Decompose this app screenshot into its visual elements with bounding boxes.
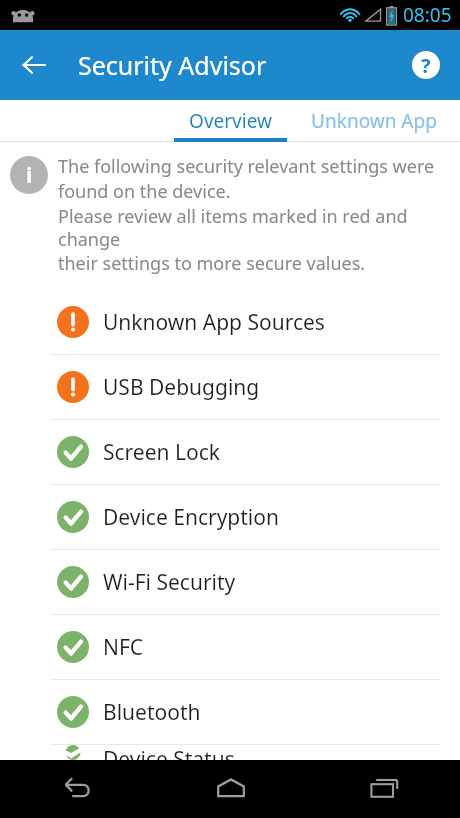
staticText: Wi-Fi Security <box>103 568 236 597</box>
staticText: i <box>26 161 33 190</box>
button[interactable]: Help <box>402 41 450 89</box>
staticText: Security Advisor <box>78 48 267 82</box>
button[interactable]: Home <box>154 760 307 818</box>
staticText: Please review all items marked in red an… <box>58 204 448 251</box>
button[interactable]: Recent apps <box>307 760 460 818</box>
staticText: Screen Lock <box>103 438 220 467</box>
staticText: Unknown App <box>311 108 437 134</box>
staticText: their settings to more secure values. <box>58 251 366 276</box>
staticText: Device Encryption <box>103 503 279 532</box>
button[interactable]: Screen Lock <box>0 420 460 484</box>
button[interactable]: Back <box>8 39 60 91</box>
staticText: ? <box>421 52 431 79</box>
staticText: Unknown App Sources <box>103 308 325 337</box>
staticText: Bluetooth <box>103 698 201 727</box>
button[interactable]: NFC <box>0 615 460 679</box>
button[interactable]: USB Debugging <box>0 355 460 419</box>
staticText: The following security relevant settings… <box>58 154 435 179</box>
button[interactable]: Back <box>0 760 154 818</box>
staticText: Overview <box>189 108 272 134</box>
button[interactable]: Overview <box>174 100 287 142</box>
staticText: 08:05 <box>403 2 452 28</box>
staticText: found on the device. <box>58 179 231 204</box>
button[interactable]: Unknown App <box>287 100 460 142</box>
staticText: USB Debugging <box>103 373 260 402</box>
button[interactable]: Wi-Fi Security <box>0 550 460 614</box>
staticText: NFC <box>103 633 144 662</box>
button[interactable]: Device Encryption <box>0 485 460 549</box>
button[interactable]: Bluetooth <box>0 680 460 744</box>
button[interactable]: Device Status <box>0 745 460 760</box>
button[interactable]: Unknown App Sources <box>0 290 460 354</box>
staticText: Device Status <box>103 745 235 760</box>
